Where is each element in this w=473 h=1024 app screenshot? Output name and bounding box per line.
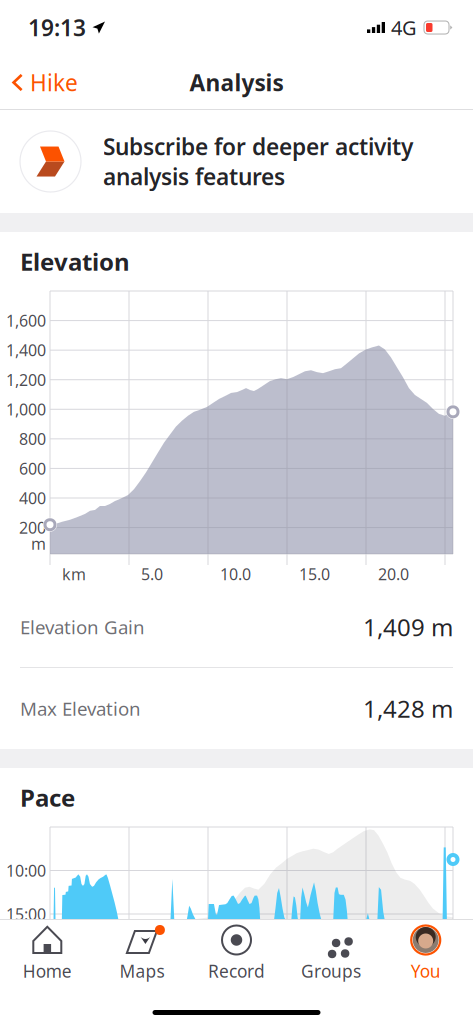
staticText: m [31,533,46,554]
staticText: Analysis [189,67,283,97]
staticText: 5.0 [141,563,163,585]
staticText: 1,600 [6,310,46,331]
staticText: 4G [391,14,417,41]
staticText: Maps [119,959,164,982]
staticText: Groups [301,959,361,982]
button[interactable]: Groups [284,920,378,987]
staticText: You [411,959,441,982]
button[interactable]: Hike [0,60,90,104]
staticText: 15.0 [299,563,330,585]
staticText: 1,409 m [363,611,453,643]
staticText: 19:13 [28,12,86,42]
staticText: Elevation Gain [20,615,145,639]
button[interactable]: Maps [95,920,189,987]
staticText: Pace [20,782,75,813]
button[interactable]: You [378,920,473,987]
button[interactable]: Record [189,920,284,987]
staticText: 1,428 m [363,693,453,724]
staticText: Home [23,959,72,982]
staticText: 1,200 [6,369,46,390]
button[interactable]: Home [0,920,95,987]
staticText: 10:00 [6,860,46,881]
staticText: 1,000 [6,399,46,420]
staticText: 10.0 [220,563,251,585]
button[interactable]: Subscribe for deeper activity analysis f… [0,110,473,213]
staticText: 1,400 [6,339,46,361]
staticText: Hike [30,67,78,97]
staticText: Record [208,959,265,982]
staticText: 200 [19,517,46,538]
staticText: 600 [19,458,46,479]
staticText: Subscribe for deeper activity analysis f… [103,131,413,192]
staticText: 400 [19,487,46,509]
staticText: km [62,563,86,585]
staticText: 15:00 [6,903,46,925]
staticText: 800 [19,428,46,449]
staticText: Max Elevation [20,696,141,721]
staticText: Elevation [20,246,130,277]
staticText: 20.0 [378,563,409,585]
